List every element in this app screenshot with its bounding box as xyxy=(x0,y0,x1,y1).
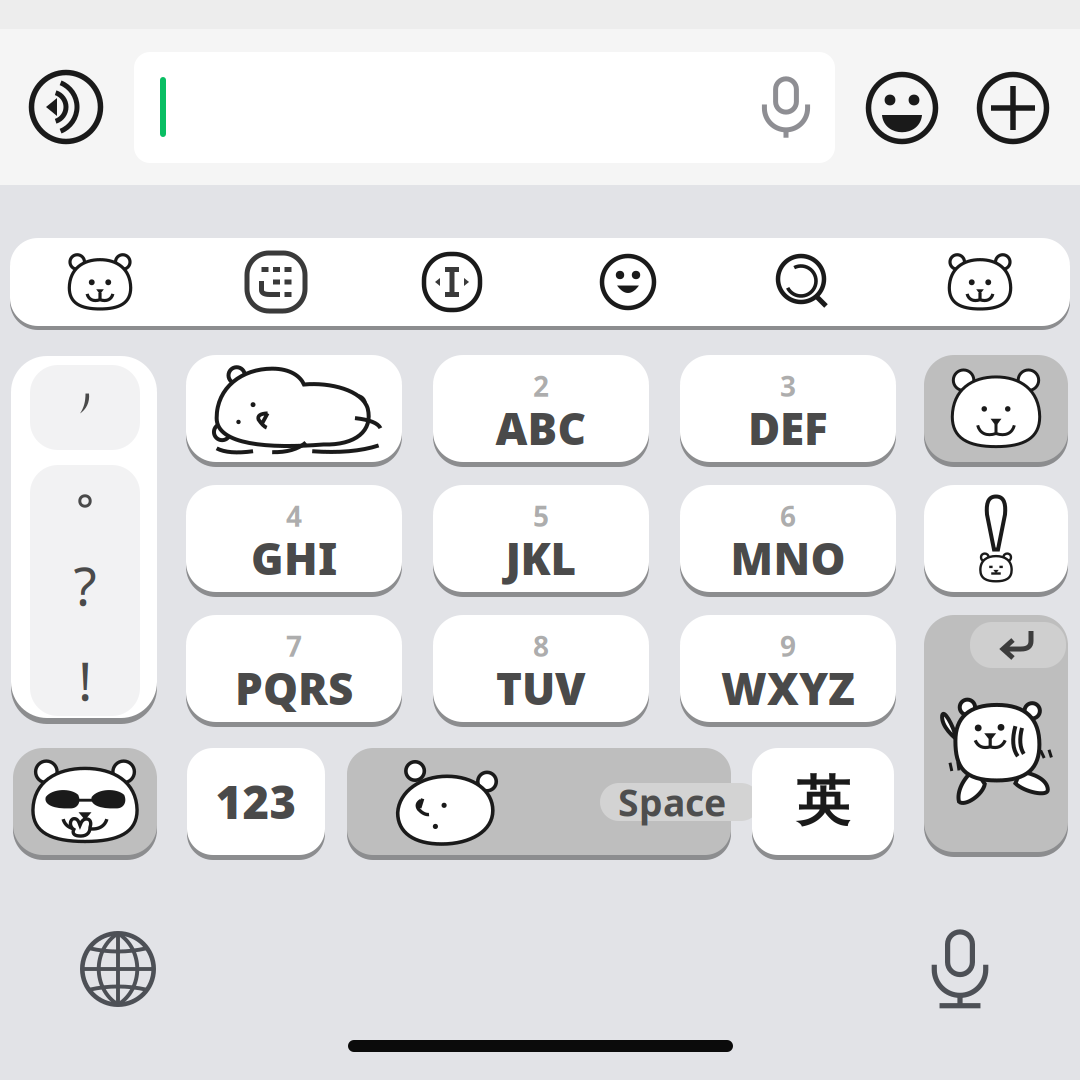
staticText: 英 xyxy=(796,769,849,834)
staticText: MNO xyxy=(730,529,845,587)
staticText: TUV xyxy=(496,659,586,717)
button[interactable]: 123 xyxy=(187,748,325,855)
staticText: Space xyxy=(618,777,726,827)
button[interactable]: 9 xyxy=(680,615,896,722)
staticText: 6 xyxy=(780,497,796,535)
staticText: PQRS xyxy=(235,659,353,717)
button[interactable]: Space xyxy=(347,748,731,855)
button[interactable]: Dictate xyxy=(929,927,991,1009)
button[interactable]: 6 xyxy=(680,485,896,592)
button[interactable] xyxy=(924,355,1068,462)
staticText: 2 xyxy=(533,367,549,405)
button[interactable]: Cursor xyxy=(364,238,540,326)
button[interactable]: Dictate xyxy=(760,75,812,139)
button[interactable]: Add xyxy=(977,72,1049,144)
staticText: WXYZ xyxy=(721,659,855,717)
button[interactable] xyxy=(30,365,140,450)
staticText: ABC xyxy=(495,399,586,457)
staticText: 123 xyxy=(215,771,296,832)
staticText: ! xyxy=(78,645,92,715)
button[interactable] xyxy=(924,485,1068,592)
button[interactable]: 5 xyxy=(433,485,649,592)
button[interactable]: Emoji xyxy=(866,72,938,144)
button[interactable]: 2 xyxy=(433,355,649,462)
button[interactable] xyxy=(186,355,402,462)
button[interactable]: 7 xyxy=(186,615,402,722)
button[interactable]: Search xyxy=(716,238,892,326)
button[interactable]: 4 xyxy=(186,485,402,592)
staticText: 8 xyxy=(533,627,549,665)
button[interactable] xyxy=(924,615,1068,852)
staticText: JKL xyxy=(505,529,576,587)
button[interactable]: ? xyxy=(30,465,140,716)
staticText: ? xyxy=(73,550,96,620)
button[interactable]: Characters xyxy=(892,238,1068,326)
button[interactable]: Emoji xyxy=(540,238,716,326)
button[interactable]: 英 xyxy=(752,748,894,855)
button[interactable]: Sound xyxy=(29,70,103,144)
staticText: 7 xyxy=(286,627,302,665)
button[interactable]: Next keyboard xyxy=(80,931,156,1007)
button[interactable]: Stickers xyxy=(12,238,188,326)
staticText: 9 xyxy=(780,627,796,665)
button[interactable] xyxy=(13,748,157,855)
button[interactable]: 8 xyxy=(433,615,649,722)
staticText: DEF xyxy=(748,399,828,457)
staticText: 4 xyxy=(286,497,302,535)
button[interactable]: 3 xyxy=(680,355,896,462)
button[interactable]: Input mode xyxy=(188,238,364,326)
staticText: 3 xyxy=(780,367,796,405)
staticText: GHI xyxy=(251,529,337,587)
staticText: 5 xyxy=(533,497,549,535)
